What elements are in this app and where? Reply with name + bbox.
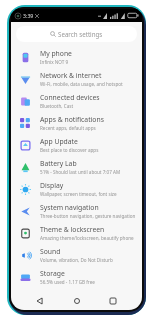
button[interactable]: Search settings	[16, 26, 137, 42]
staticText: Sound	[40, 247, 61, 256]
staticText: Amazing theme/lockscreen, beautify phone	[40, 235, 134, 241]
staticText: Battery Lab	[40, 159, 77, 168]
button[interactable]: Theme & lockscreen	[11, 222, 142, 244]
staticText: Wallpaper, screen timeout, font size	[40, 191, 117, 197]
button[interactable]: Home	[69, 293, 85, 309]
button[interactable]: Recent apps	[105, 293, 121, 309]
staticText: Recent apps, default apps	[40, 125, 96, 131]
staticText: Connected devices	[40, 93, 100, 102]
button[interactable]: My phone	[11, 46, 142, 68]
button[interactable]: System navigation	[11, 200, 142, 222]
staticText: Theme & lockscreen	[40, 225, 105, 234]
staticText: Storage	[40, 269, 65, 278]
staticText: My phone	[40, 49, 72, 58]
staticText: Three-button navigation, gesture navigat…	[40, 213, 136, 219]
staticText: 3:39	[23, 12, 34, 19]
staticText: Infinix NOT 9	[40, 59, 69, 65]
staticText: 51% - Should last until about 7:07 AM	[40, 169, 121, 175]
staticText: Apps & notifications	[40, 115, 104, 124]
button[interactable]: Battery Lab	[11, 156, 142, 178]
button[interactable]: Network & internet	[11, 68, 142, 90]
button[interactable]: Display	[11, 178, 142, 200]
staticText: Bluetooth, Cast	[40, 103, 74, 109]
staticText: Wi-Fi, mobile, data usage, and hotspot	[40, 81, 123, 87]
button[interactable]: Apps & notifications	[11, 112, 142, 134]
button[interactable]: Storage	[11, 266, 142, 288]
staticText: 56.5% used - 1.17 GB free	[40, 279, 95, 285]
staticText: Display	[40, 181, 64, 190]
button[interactable]: Connected devices	[11, 90, 142, 112]
button[interactable]: App Update	[11, 134, 142, 156]
staticText: System navigation	[40, 203, 99, 212]
staticText: Network & internet	[40, 71, 102, 80]
staticText: Best place to discover apps	[40, 147, 99, 153]
button[interactable]: Back	[32, 293, 48, 309]
staticText: Volume, vibration, Do Not Disturb	[40, 257, 113, 263]
button[interactable]: Sound	[11, 244, 142, 266]
staticText: App Update	[40, 137, 78, 146]
staticText: Search settings	[58, 30, 103, 38]
